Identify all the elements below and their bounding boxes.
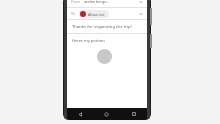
staticText: From	[71, 0, 80, 4]
button[interactable]: Expand recipients	[137, 0, 144, 5]
button[interactable]: From	[67, 0, 147, 7]
button[interactable]: Thanks for organizing the trip!	[67, 20, 147, 33]
button[interactable]: Recent apps	[120, 108, 147, 120]
staticText: Alissa Lee	[88, 12, 105, 17]
staticText: To	[71, 11, 75, 16]
button[interactable]: Expand recipients	[137, 10, 144, 17]
button[interactable]: Alissa Lee	[79, 10, 109, 18]
staticText: Heres my portion	[72, 38, 105, 43]
button[interactable]: Back	[67, 108, 93, 120]
staticText: aralee.bergen@gmail.com	[84, 0, 110, 4]
button[interactable]: Heres my portion	[67, 34, 147, 108]
staticText: Thanks for organizing the trip!	[72, 24, 132, 30]
button[interactable]: Home	[93, 108, 120, 120]
other: Loading attachment	[97, 49, 112, 64]
button[interactable]: To	[67, 8, 147, 19]
